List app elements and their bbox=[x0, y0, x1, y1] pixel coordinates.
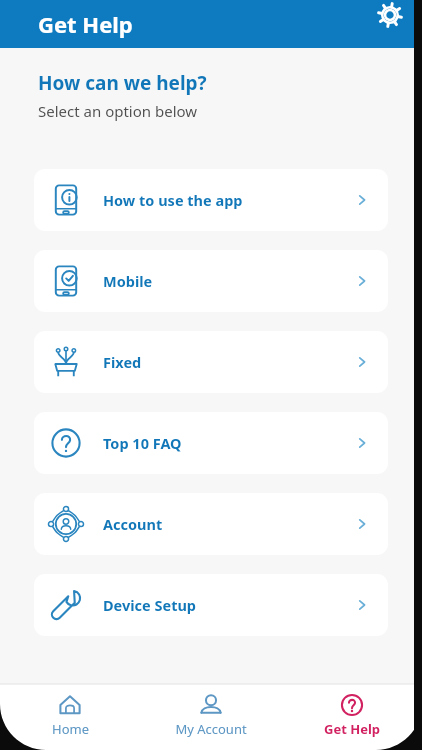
staticText: Home bbox=[52, 720, 89, 738]
button[interactable]: Mobile bbox=[34, 250, 388, 312]
button[interactable]: Device Setup bbox=[34, 574, 388, 636]
staticText: How to use the app bbox=[103, 190, 354, 210]
button[interactable]: Fixed bbox=[34, 331, 388, 393]
staticText: Fixed bbox=[103, 352, 354, 372]
staticText: Select an option below bbox=[38, 101, 198, 121]
staticText: Top 10 FAQ bbox=[103, 433, 354, 453]
staticText: Get Help bbox=[324, 720, 380, 738]
staticText: My Account bbox=[175, 720, 247, 738]
button[interactable]: My Account bbox=[140, 684, 281, 750]
button[interactable]: Settings bbox=[368, 0, 412, 44]
staticText: Account bbox=[103, 514, 354, 534]
button[interactable]: How to use the app bbox=[34, 169, 388, 231]
button[interactable]: Account bbox=[34, 493, 388, 555]
button[interactable]: Get Help bbox=[281, 684, 422, 750]
staticText: How can we help? bbox=[38, 70, 207, 96]
button[interactable]: Home bbox=[0, 684, 140, 750]
staticText: Device Setup bbox=[103, 595, 354, 615]
staticText: Get Help bbox=[38, 9, 133, 39]
staticText: Mobile bbox=[103, 271, 354, 291]
button[interactable]: Top 10 FAQ bbox=[34, 412, 388, 474]
